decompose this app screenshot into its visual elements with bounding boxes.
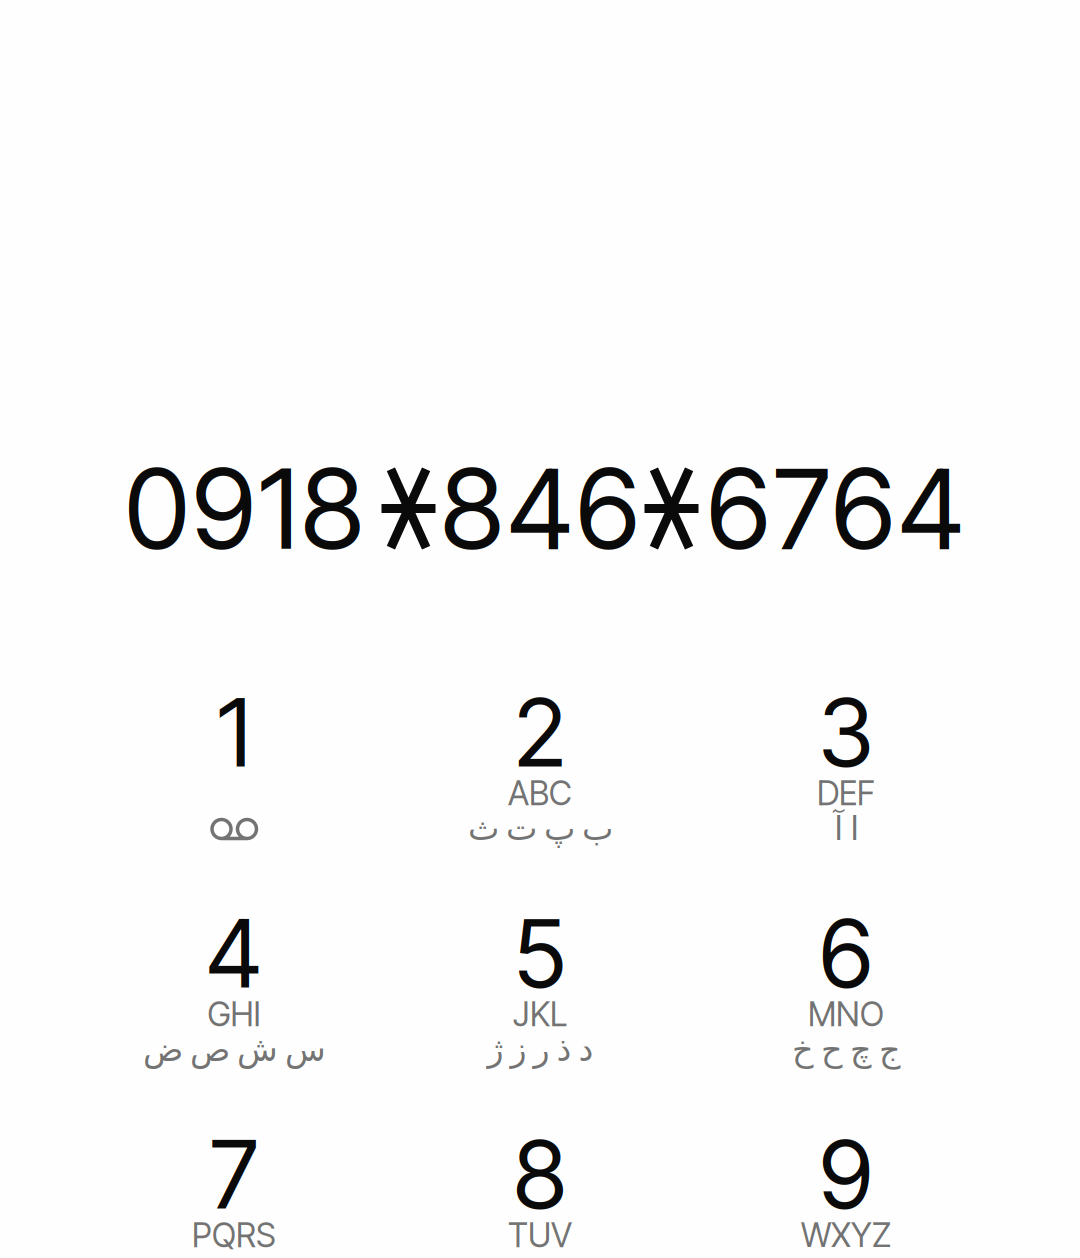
staticText: 1 [217,676,250,789]
button[interactable]: 4 [81,911,387,1132]
staticText: 9 [819,1118,872,1231]
staticText: JKL [513,994,567,1034]
staticText: س ش ص ض [142,1030,325,1069]
staticText: 4 [206,897,262,1010]
staticText: 2 [514,676,566,789]
staticText: ABC [508,773,572,813]
staticText: MNO [808,994,884,1034]
staticText: PQRS [192,1215,276,1255]
button[interactable]: 7 [81,1132,387,1258]
staticText: WXYZ [801,1215,891,1255]
button[interactable]: 5 [387,911,693,1132]
staticText: د ذ ر ز ژ [487,1030,593,1069]
staticText: TUV [508,1215,572,1255]
button[interactable]: 3 [693,690,999,911]
button[interactable]: 9 [693,1132,999,1258]
staticText: 6 [819,897,872,1010]
staticText: 6764 [707,441,964,575]
staticText: 846 [441,441,639,575]
staticText: 5 [514,897,566,1010]
staticText: ا آ [833,809,858,848]
button[interactable]: 1 [81,690,387,911]
staticText: ب پ ت ث [467,809,612,848]
staticText: 8 [513,1118,566,1231]
staticText: GHI [207,994,260,1034]
staticText: 3 [818,676,873,789]
staticText: ج چ ح خ [791,1030,900,1069]
button[interactable]: 2 [387,690,693,911]
button[interactable]: 6 [693,911,999,1132]
staticText: DEF [817,773,875,813]
button[interactable]: 8 [387,1132,693,1258]
staticText: 0918 [125,441,364,575]
staticText: 7 [210,1118,258,1231]
